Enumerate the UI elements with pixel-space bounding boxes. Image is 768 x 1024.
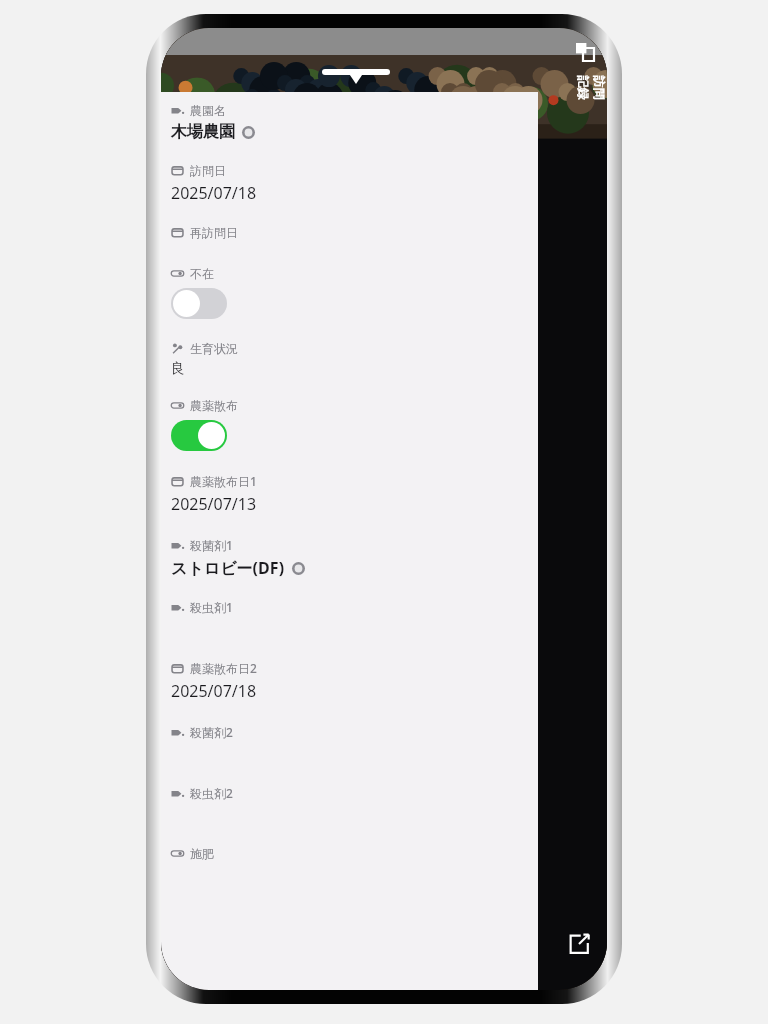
button[interactable]: 農園名 bbox=[171, 103, 530, 142]
staticText: 殺菌剤2 bbox=[190, 724, 233, 740]
button[interactable]: 殺菌剤1 bbox=[171, 537, 530, 579]
staticText: 良 bbox=[171, 360, 185, 378]
button[interactable]: 再訪問日 bbox=[171, 225, 530, 240]
button[interactable]: 殺菌剤2 bbox=[171, 724, 530, 740]
staticText: 2025/07/18 bbox=[171, 182, 257, 204]
staticText: 殺虫剤1 bbox=[190, 599, 233, 615]
button[interactable]: 生育状況 bbox=[171, 341, 530, 378]
staticText: 訪問日 bbox=[190, 163, 226, 178]
staticText: 殺菌剤1 bbox=[190, 537, 233, 553]
staticText: 不在 bbox=[190, 266, 214, 281]
button[interactable]: Edit bbox=[563, 928, 595, 960]
button[interactable]: 殺虫剤1 bbox=[171, 599, 530, 615]
button[interactable] bbox=[322, 69, 390, 75]
staticText: 再訪問日 bbox=[190, 225, 238, 240]
button[interactable]: 訪問日 bbox=[171, 163, 530, 204]
staticText: 農園名 bbox=[190, 103, 226, 118]
staticText: 施肥 bbox=[190, 846, 214, 861]
button[interactable] bbox=[171, 420, 227, 451]
button[interactable] bbox=[171, 288, 227, 319]
staticText: 殺虫剤2 bbox=[190, 785, 233, 801]
staticText: 生育状況 bbox=[190, 341, 238, 356]
staticText: 農薬散布 bbox=[190, 398, 238, 413]
staticText: 2025/07/13 bbox=[171, 493, 257, 515]
button[interactable]: 不在 bbox=[171, 266, 530, 319]
button[interactable]: 殺虫剤2 bbox=[171, 785, 530, 801]
button[interactable]: 農薬散布日2 bbox=[171, 660, 530, 702]
staticText: 2025/07/18 bbox=[171, 680, 257, 702]
staticText: 木場農園 bbox=[171, 122, 235, 142]
button[interactable]: 農薬散布日1 bbox=[171, 473, 530, 515]
button[interactable]: 施肥 bbox=[171, 846, 530, 861]
staticText: ストロビー(DF) bbox=[171, 557, 285, 579]
staticText: 農薬散布日2 bbox=[190, 660, 257, 676]
staticText: 訪問記録 bbox=[575, 76, 607, 104]
button[interactable]: 農薬散布 bbox=[171, 398, 530, 451]
staticText: 農薬散布日1 bbox=[190, 473, 257, 489]
button[interactable]: Copy bbox=[571, 38, 599, 66]
